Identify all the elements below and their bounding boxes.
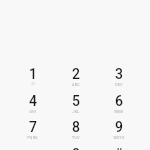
button[interactable]: 5 JKL [54,90,97,117]
staticText: 4 [29,93,37,109]
button[interactable]: 1 voicemail [11,63,54,90]
button[interactable]: 8 TUV [54,116,97,143]
button[interactable]: pound [97,143,140,150]
staticText: DEF [115,83,123,87]
button[interactable]: 3 DEF [97,63,140,90]
staticText: 3 [115,66,123,82]
staticText: 1 [29,66,37,82]
staticText: MNO [114,110,124,114]
staticText: # [114,146,123,150]
button[interactable]: 2 ABC [54,63,97,90]
staticText: GHI [29,110,37,114]
staticText: 6 [115,93,123,109]
button[interactable]: 9 WXYZ [97,116,140,143]
button[interactable]: 6 MNO [97,90,140,117]
staticText: 8 [72,119,80,135]
staticText: 5 [72,93,80,109]
staticText: 0 [72,146,80,150]
staticText: WXYZ [113,136,125,140]
button[interactable]: 0 plus [54,143,97,150]
staticText: 7 [29,119,37,135]
staticText: ABC [72,83,80,87]
staticText: 9 [115,119,123,135]
button[interactable]: 7 PQRS [11,116,54,143]
staticText: JKL [72,110,80,114]
staticText: TUV [72,136,80,140]
button[interactable]: 4 GHI [11,90,54,117]
staticText: PQRS [27,136,38,140]
staticText: 2 [72,66,80,82]
